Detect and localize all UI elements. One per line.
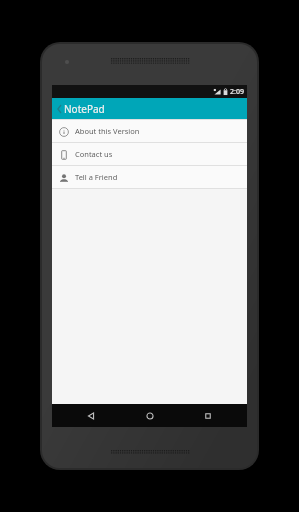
button[interactable]: Tell a Friend: [52, 166, 247, 188]
staticText: Tell a Friend: [75, 172, 118, 182]
button[interactable]: About this Version: [52, 120, 247, 142]
button[interactable]: Back: [71, 404, 111, 427]
staticText: NotePad: [64, 102, 105, 116]
button[interactable]: Back: [54, 100, 64, 118]
staticText: About this Version: [75, 126, 140, 136]
button[interactable]: Contact us: [52, 143, 247, 165]
button[interactable]: Home: [130, 404, 170, 427]
staticText: 2:09: [230, 87, 244, 97]
button[interactable]: Recent apps: [188, 404, 228, 427]
staticText: Contact us: [75, 149, 113, 159]
